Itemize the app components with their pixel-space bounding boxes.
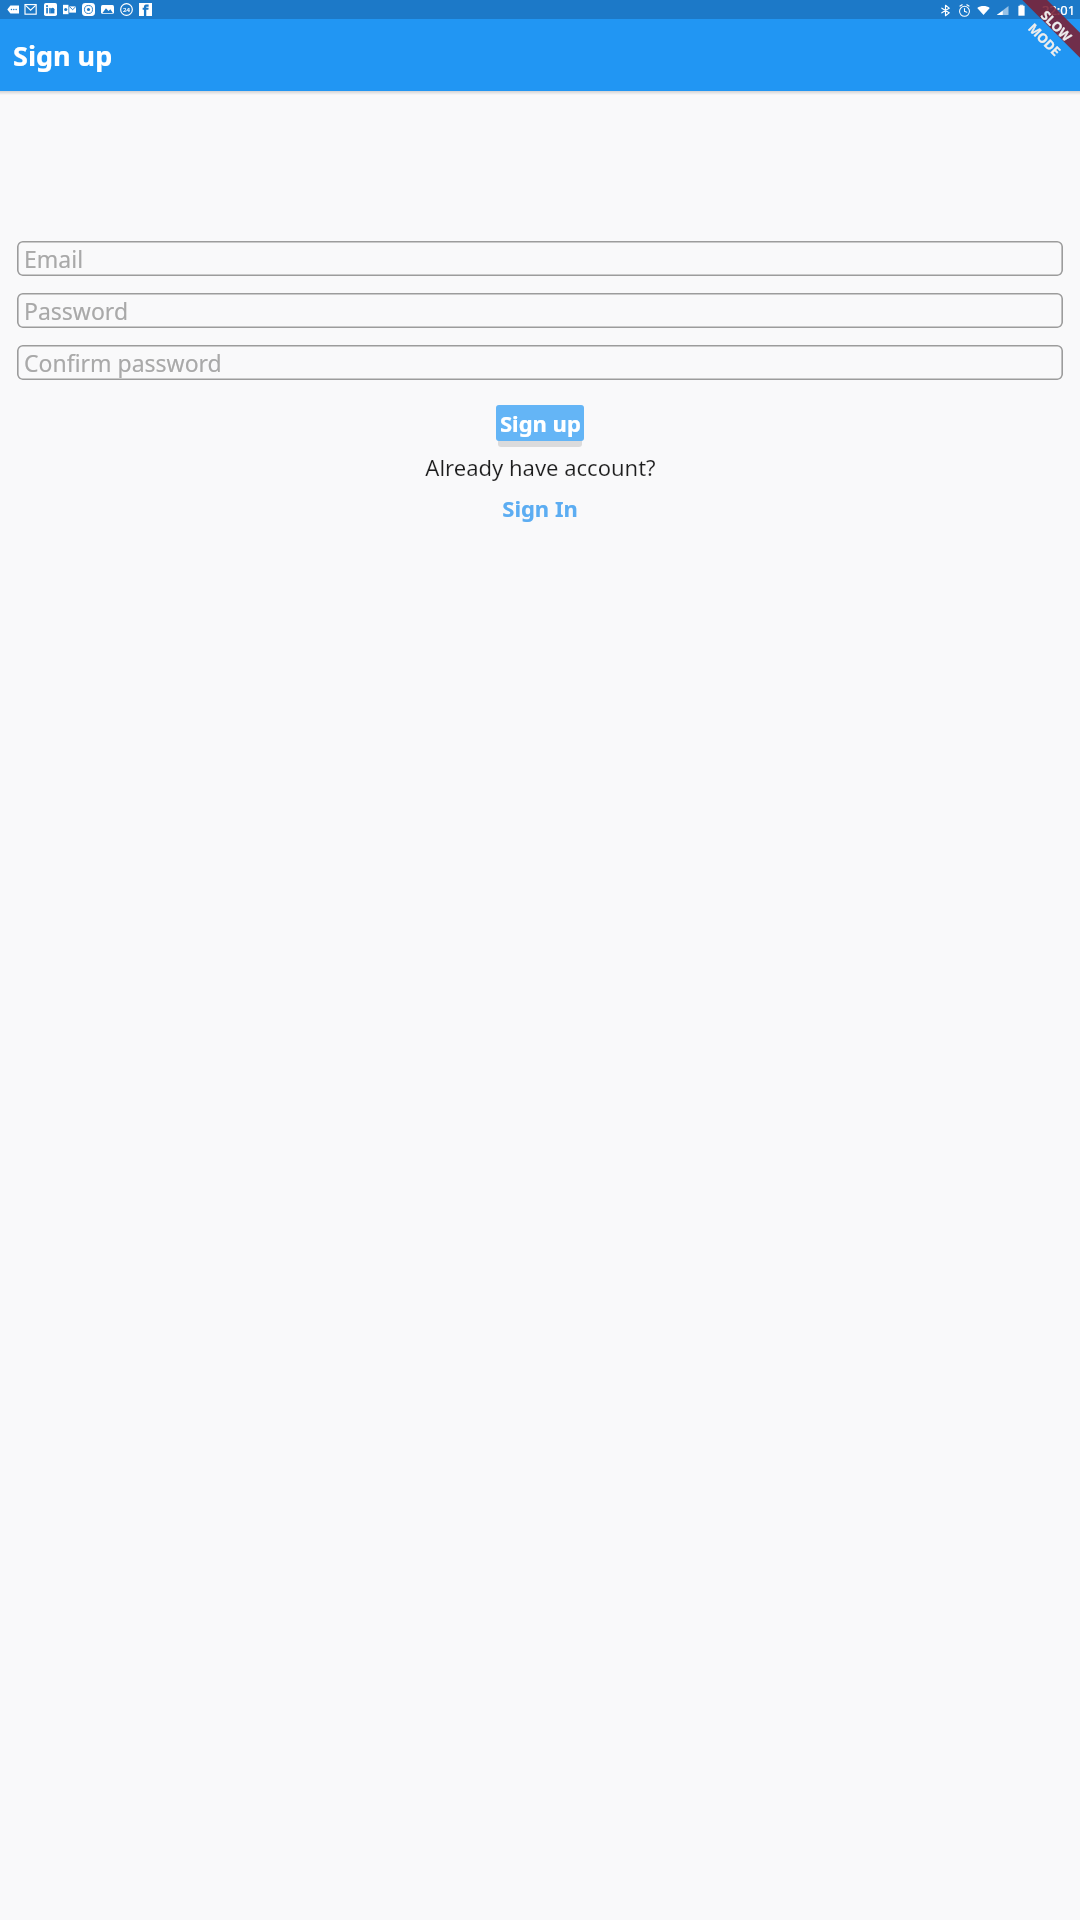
staticText: Already have account? [425, 452, 656, 482]
staticText: Confirm password [24, 347, 222, 378]
staticText: 24 [123, 6, 130, 14]
button[interactable]: Sign In [492, 490, 588, 526]
button[interactable]: Password [17, 293, 1063, 328]
staticText: Email [24, 243, 84, 274]
staticText: Password [24, 295, 129, 326]
staticText: 22:01 [1042, 1, 1076, 19]
staticText: Sign up [13, 37, 113, 74]
staticText: Sign up [500, 408, 581, 438]
button[interactable]: Confirm password [17, 345, 1063, 380]
staticText: Sign In [502, 493, 578, 523]
staticText: SLOW MODE [1024, 6, 1080, 76]
button[interactable]: Sign up [496, 405, 584, 441]
button[interactable]: Email [17, 241, 1063, 276]
